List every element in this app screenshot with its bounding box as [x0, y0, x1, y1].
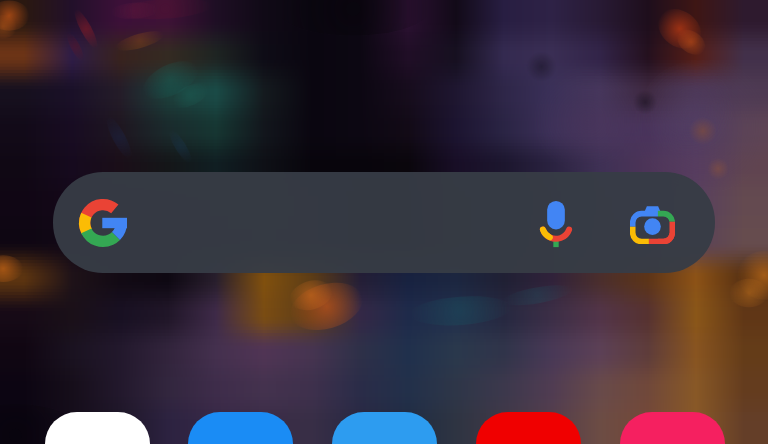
button[interactable]: Assistant	[620, 412, 725, 444]
button[interactable]: Voice search	[523, 190, 589, 256]
button[interactable]: Google Search	[70, 190, 136, 256]
button[interactable]: Google Lens	[619, 190, 685, 256]
button[interactable]: YouTube	[476, 412, 581, 444]
button[interactable]: Search	[53, 172, 715, 273]
button[interactable]: Messages	[188, 412, 293, 444]
button[interactable]: Phone	[332, 412, 437, 444]
button[interactable]: Maps	[45, 412, 150, 444]
